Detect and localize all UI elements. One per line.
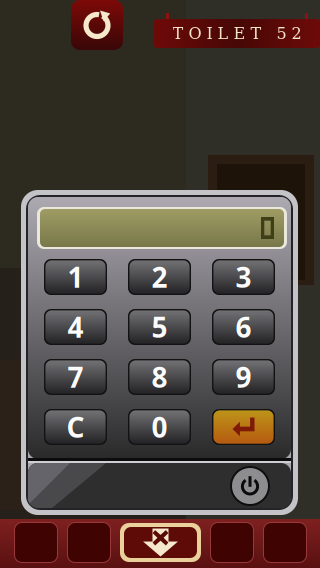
staticText: T O I L E T 5 2 [172, 24, 301, 43]
button[interactable]: 4 [44, 309, 107, 345]
staticText: 9 [235, 358, 251, 396]
button[interactable]: 6 [212, 309, 275, 345]
staticText: 5 [151, 308, 167, 346]
staticText: 3 [235, 258, 251, 296]
staticText: C [66, 408, 84, 446]
staticText: 0 [151, 408, 167, 446]
button[interactable]: Inventory slot [14, 522, 58, 563]
button[interactable]: 7 [44, 359, 107, 395]
staticText: 8 [151, 358, 167, 396]
button[interactable]: 3 [212, 259, 275, 295]
button[interactable]: Inventory slot [210, 522, 254, 563]
staticText: 1 [67, 258, 83, 296]
button[interactable]: Inventory slot [67, 522, 111, 563]
button[interactable]: 9 [212, 359, 275, 395]
button[interactable]: C [44, 409, 107, 445]
staticText: 7 [67, 358, 83, 396]
button[interactable]: Inventory slot [263, 522, 307, 563]
button[interactable]: 5 [128, 309, 191, 345]
button[interactable]: Drop item [120, 523, 201, 562]
button[interactable]: 0 [128, 409, 191, 445]
staticText: 4 [67, 308, 83, 346]
button[interactable]: Restart [71, 0, 123, 50]
button[interactable]: 1 [44, 259, 107, 295]
button[interactable]: Enter [212, 409, 275, 445]
button[interactable]: 8 [128, 359, 191, 395]
staticText: 2 [151, 258, 167, 296]
button[interactable]: Power [229, 465, 271, 507]
button[interactable]: 2 [128, 259, 191, 295]
staticText: 6 [235, 308, 251, 346]
